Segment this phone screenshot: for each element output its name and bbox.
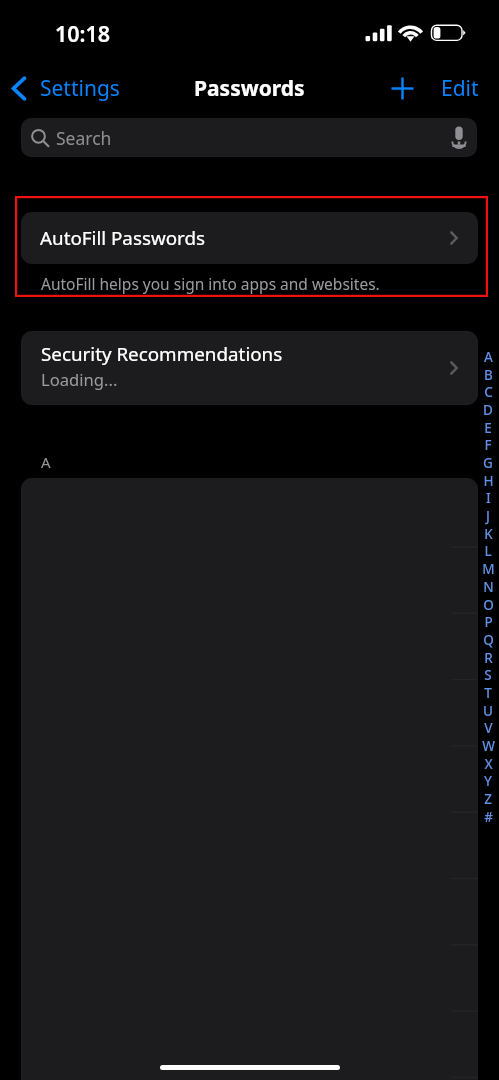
button[interactable]: AutoFill Passwords — [21, 212, 478, 264]
staticText: L — [484, 542, 492, 560]
staticText: Edit — [441, 74, 479, 103]
staticText: V — [484, 719, 493, 737]
staticText: # — [484, 808, 493, 826]
staticText: G — [483, 454, 493, 472]
staticText: A — [484, 348, 493, 366]
staticText: X — [484, 755, 493, 773]
staticText: C — [484, 383, 493, 401]
staticText: A — [41, 452, 51, 472]
staticText: I — [486, 489, 491, 507]
staticText: Settings — [40, 74, 120, 103]
staticText: P — [484, 613, 493, 631]
button[interactable]: Security Recommendations — [21, 331, 478, 405]
staticText: J — [486, 507, 490, 525]
staticText: U — [483, 702, 493, 720]
staticText: Y — [484, 772, 492, 790]
staticText: M — [482, 560, 495, 578]
button[interactable]: Add password — [387, 69, 441, 108]
staticText: Q — [483, 631, 494, 649]
button[interactable]: Alphabet index — [478, 348, 498, 838]
button[interactable]: Search — [21, 118, 477, 157]
staticText: Loading... — [41, 368, 118, 391]
staticText: AutoFill Passwords — [40, 225, 205, 251]
staticText: D — [483, 401, 493, 419]
staticText: W — [482, 737, 495, 755]
button[interactable]: Edit — [441, 68, 499, 109]
button[interactable]: Voice search — [446, 125, 472, 151]
staticText: K — [484, 525, 493, 543]
staticText: 10:18 — [55, 19, 111, 48]
staticText: O — [483, 596, 494, 614]
staticText: N — [483, 578, 494, 596]
staticText: T — [484, 684, 492, 702]
staticText: R — [484, 649, 493, 667]
staticText: Security Recommendations — [41, 341, 283, 367]
staticText: Passwords — [194, 74, 305, 103]
staticText: F — [484, 436, 492, 454]
button[interactable]: Settings — [0, 68, 128, 109]
staticText: E — [484, 419, 492, 437]
staticText: Z — [484, 790, 492, 808]
staticText: H — [483, 472, 494, 490]
staticText: B — [484, 366, 493, 384]
staticText: Search — [56, 126, 112, 150]
staticText: S — [484, 666, 492, 684]
staticText: AutoFill helps you sign into apps and we… — [41, 273, 380, 294]
